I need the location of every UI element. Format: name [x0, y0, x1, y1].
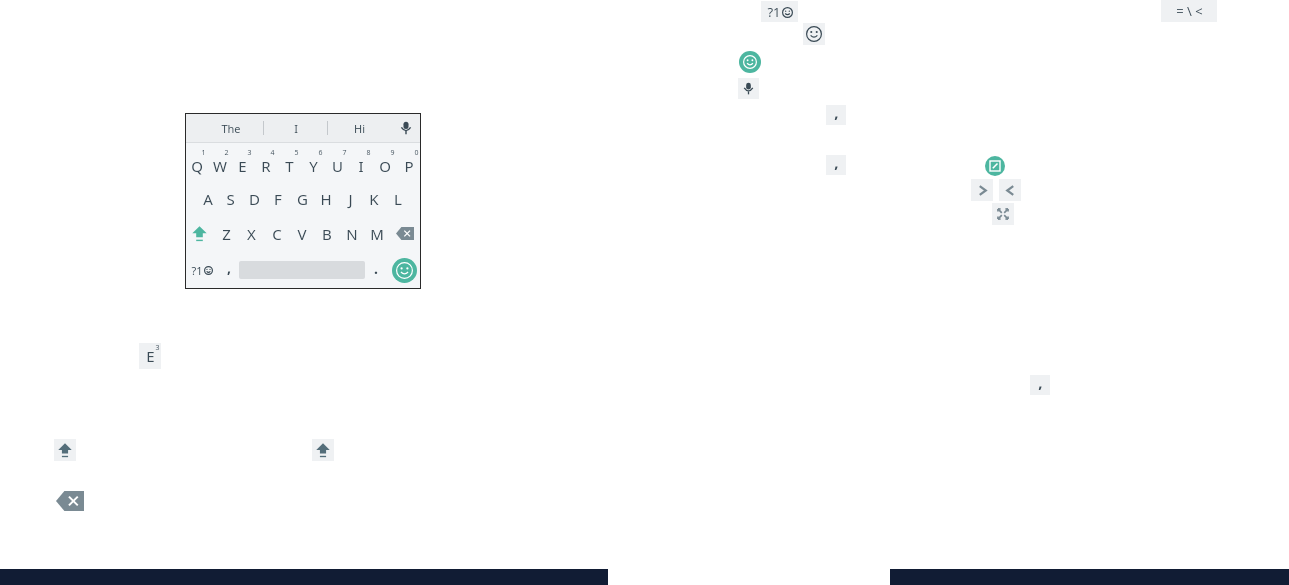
staticText: = \ < — [1176, 2, 1203, 20]
staticText: H — [320, 189, 332, 209]
button[interactable]: Delete — [389, 216, 421, 251]
button[interactable]: Move left — [999, 179, 1021, 201]
button[interactable]: S — [219, 181, 242, 216]
button[interactable]: The — [199, 113, 263, 143]
button[interactable]: , — [826, 105, 846, 125]
staticText: A — [203, 189, 213, 209]
staticText: D — [249, 189, 260, 209]
staticText: X — [247, 224, 256, 244]
staticText: , — [834, 102, 839, 122]
staticText: S — [226, 189, 235, 209]
button[interactable]: Shift — [185, 216, 213, 251]
staticText: Z — [222, 224, 231, 244]
staticText: 2 — [224, 148, 229, 158]
staticText: L — [394, 189, 402, 209]
button[interactable]: Emoji — [387, 251, 421, 289]
button[interactable]: Shift — [312, 439, 334, 461]
staticText: F — [274, 189, 282, 209]
button[interactable]: B — [314, 216, 339, 251]
button[interactable]: P — [397, 145, 421, 181]
button[interactable]: N — [339, 216, 364, 251]
button[interactable]: , — [1030, 375, 1050, 395]
button[interactable]: E — [231, 145, 254, 181]
button[interactable]: V — [289, 216, 314, 251]
button[interactable]: K — [362, 181, 386, 216]
staticText: ?1 — [191, 263, 203, 278]
staticText: Hi — [354, 121, 365, 136]
staticText: 5 — [294, 148, 299, 158]
staticText: , — [227, 258, 231, 277]
staticText: 0 — [414, 148, 419, 158]
button[interactable]: R — [254, 145, 277, 181]
staticText: P — [404, 156, 414, 176]
button[interactable]: X — [239, 216, 264, 251]
button[interactable]: Hi — [328, 113, 391, 143]
staticText: , — [1038, 372, 1043, 392]
staticText: 3 — [155, 343, 160, 353]
staticText: M — [370, 224, 384, 244]
staticText: . — [374, 259, 378, 278]
staticText: ?1 — [767, 3, 781, 21]
staticText: The — [221, 121, 241, 136]
staticText: V — [297, 224, 307, 244]
button[interactable]: , — [826, 155, 846, 175]
button[interactable]: W — [208, 145, 231, 181]
staticText: 4 — [270, 148, 275, 158]
staticText: I — [358, 156, 364, 176]
staticText: N — [346, 224, 358, 244]
staticText: Q — [191, 156, 203, 176]
staticText: E — [146, 346, 155, 366]
button[interactable]: Y — [301, 145, 325, 181]
button[interactable]: C — [264, 216, 289, 251]
button[interactable]: = \ < — [1161, 0, 1217, 22]
button[interactable]: Expand — [992, 203, 1014, 225]
staticText: 8 — [366, 148, 371, 158]
staticText: R — [261, 156, 271, 176]
button[interactable]: I — [349, 145, 373, 181]
staticText: E — [238, 156, 247, 176]
button[interactable]: T — [277, 145, 301, 181]
button[interactable]: U — [325, 145, 349, 181]
staticText: J — [348, 189, 353, 209]
button[interactable]: O — [373, 145, 397, 181]
button[interactable]: Voice input — [391, 113, 421, 143]
staticText: B — [322, 224, 332, 244]
button[interactable]: G — [290, 181, 314, 216]
staticText: K — [369, 189, 379, 209]
staticText: T — [285, 156, 294, 176]
button[interactable]: ?1 — [185, 251, 219, 289]
button[interactable]: D — [242, 181, 266, 216]
button[interactable]: Z — [213, 216, 239, 251]
staticText: O — [379, 156, 391, 176]
staticText: Y — [309, 156, 318, 176]
button[interactable]: Delete — [56, 491, 84, 511]
button[interactable]: F — [266, 181, 290, 216]
staticText: U — [332, 156, 343, 176]
staticText: , — [834, 152, 839, 172]
button[interactable]: L — [386, 181, 410, 216]
staticText: C — [272, 224, 282, 244]
button[interactable]: ?1 — [761, 1, 798, 22]
staticText: 7 — [342, 148, 347, 158]
staticText: W — [213, 156, 227, 176]
button[interactable]: Shift — [54, 439, 76, 461]
staticText: G — [297, 189, 308, 209]
staticText: I — [294, 121, 298, 136]
button[interactable]: . — [365, 251, 387, 289]
button[interactable]: J — [338, 181, 362, 216]
button[interactable]: A — [196, 181, 219, 216]
button[interactable]: I — [264, 113, 327, 143]
button[interactable]: Emoji — [739, 51, 761, 73]
staticText: 1 — [201, 148, 206, 158]
button[interactable]: Voice input — [738, 78, 759, 99]
staticText: 9 — [390, 148, 395, 158]
button[interactable]: M — [364, 216, 389, 251]
button[interactable]: Move right — [971, 179, 993, 201]
button[interactable]: H — [314, 181, 338, 216]
button[interactable]: Resize keyboard — [985, 156, 1005, 176]
button[interactable]: Q — [185, 145, 208, 181]
staticText: 6 — [318, 148, 323, 158]
button[interactable]: , — [219, 251, 239, 289]
staticText: 3 — [247, 148, 252, 158]
